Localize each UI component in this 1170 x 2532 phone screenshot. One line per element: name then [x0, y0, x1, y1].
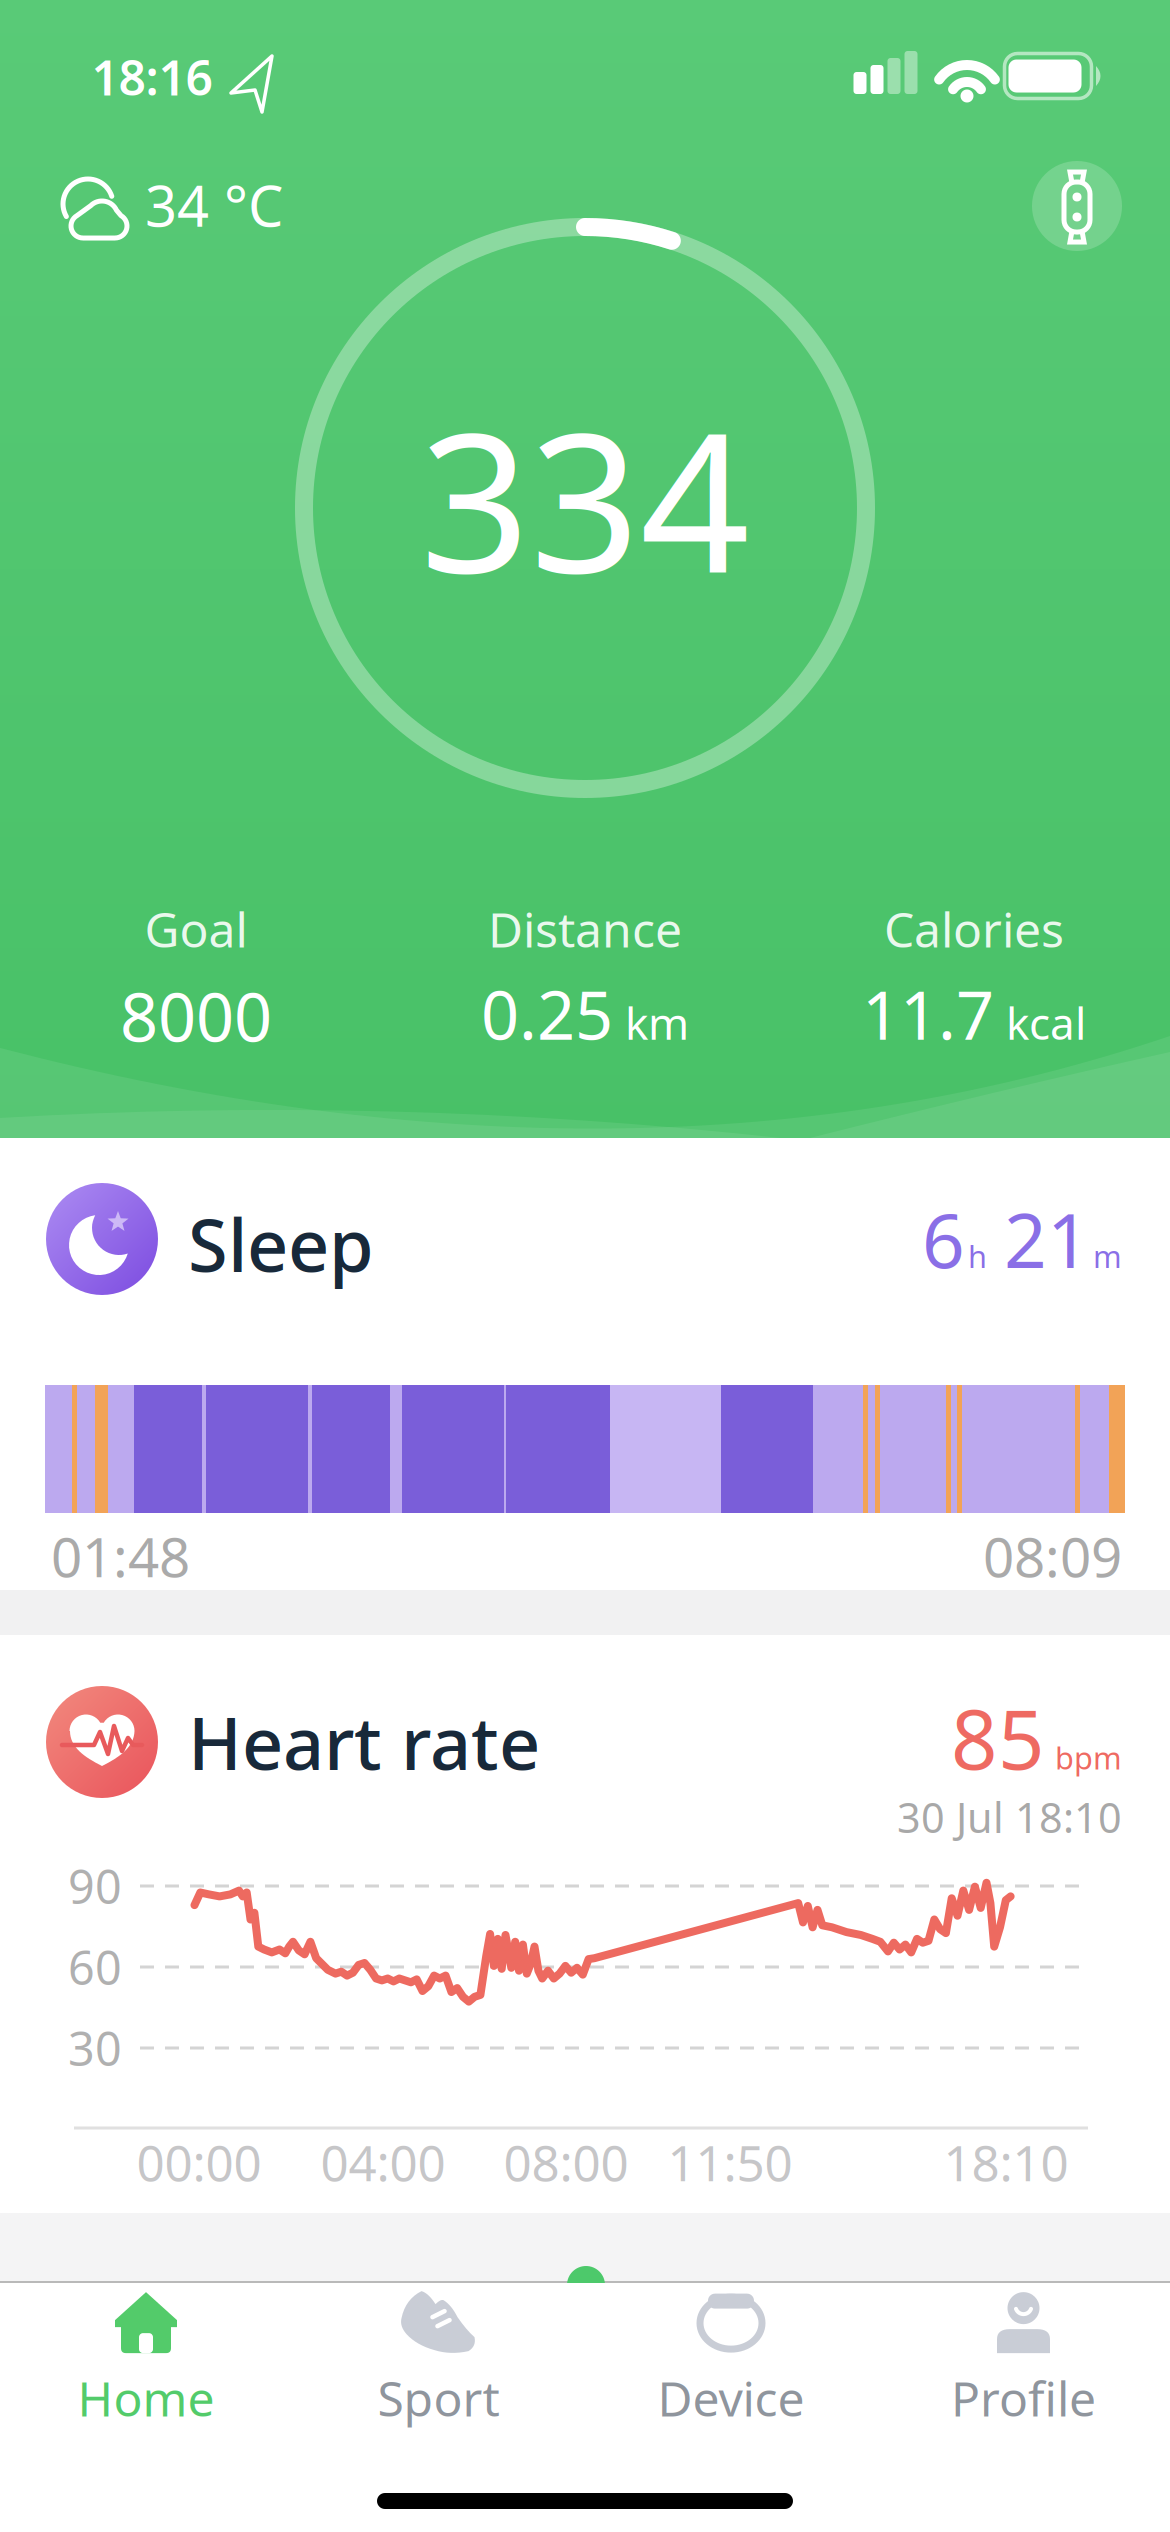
staticText: 01:48: [51, 1520, 190, 1592]
staticText: m: [1093, 1236, 1122, 1276]
staticText: 334: [420, 370, 750, 625]
staticText: 18:16: [91, 45, 212, 109]
button[interactable]: Sport: [318, 2295, 558, 2425]
staticText: 90: [68, 1855, 122, 1917]
staticText: 8000: [120, 972, 272, 1060]
staticText: 04:00: [320, 2129, 445, 2195]
button[interactable]: Device: [1032, 161, 1122, 251]
staticText: kcal: [1006, 994, 1086, 1052]
staticText: Profile: [951, 2366, 1096, 2430]
button[interactable]: Heart rate: [0, 1635, 1170, 2213]
staticText: Sleep: [188, 1196, 374, 1292]
staticText: 60: [68, 1936, 122, 1998]
staticText: 18:10: [943, 2129, 1068, 2195]
staticText: 08:00: [503, 2129, 628, 2195]
staticText: Distance: [488, 897, 682, 961]
button[interactable]: Profile: [903, 2295, 1143, 2425]
staticText: Goal: [144, 897, 247, 961]
staticText: Calories: [884, 897, 1064, 961]
staticText: 08:09: [983, 1520, 1122, 1592]
staticText: 30 Jul 18:10: [897, 1790, 1122, 1844]
staticText: Home: [77, 2366, 214, 2430]
staticText: km: [625, 994, 689, 1052]
staticText: 34 °C: [145, 168, 283, 242]
staticText: 00:00: [136, 2129, 261, 2195]
staticText: bpm: [1055, 1737, 1122, 1778]
button[interactable]: Device: [611, 2295, 851, 2425]
staticText: Heart rate: [188, 1694, 540, 1790]
staticText: 6: [922, 1189, 965, 1289]
button[interactable]: Home: [26, 2295, 266, 2425]
staticText: 30: [68, 2017, 122, 2079]
staticText: Sport: [377, 2366, 499, 2430]
staticText: 21: [1004, 1189, 1090, 1289]
staticText: Device: [657, 2366, 804, 2430]
staticText: 0.25: [481, 970, 613, 1058]
staticText: 85: [951, 1684, 1045, 1792]
staticText: h: [968, 1236, 987, 1276]
button[interactable]: Sleep: [0, 1138, 1170, 1590]
staticText: 11.7: [862, 970, 994, 1058]
staticText: 11:50: [667, 2129, 792, 2195]
